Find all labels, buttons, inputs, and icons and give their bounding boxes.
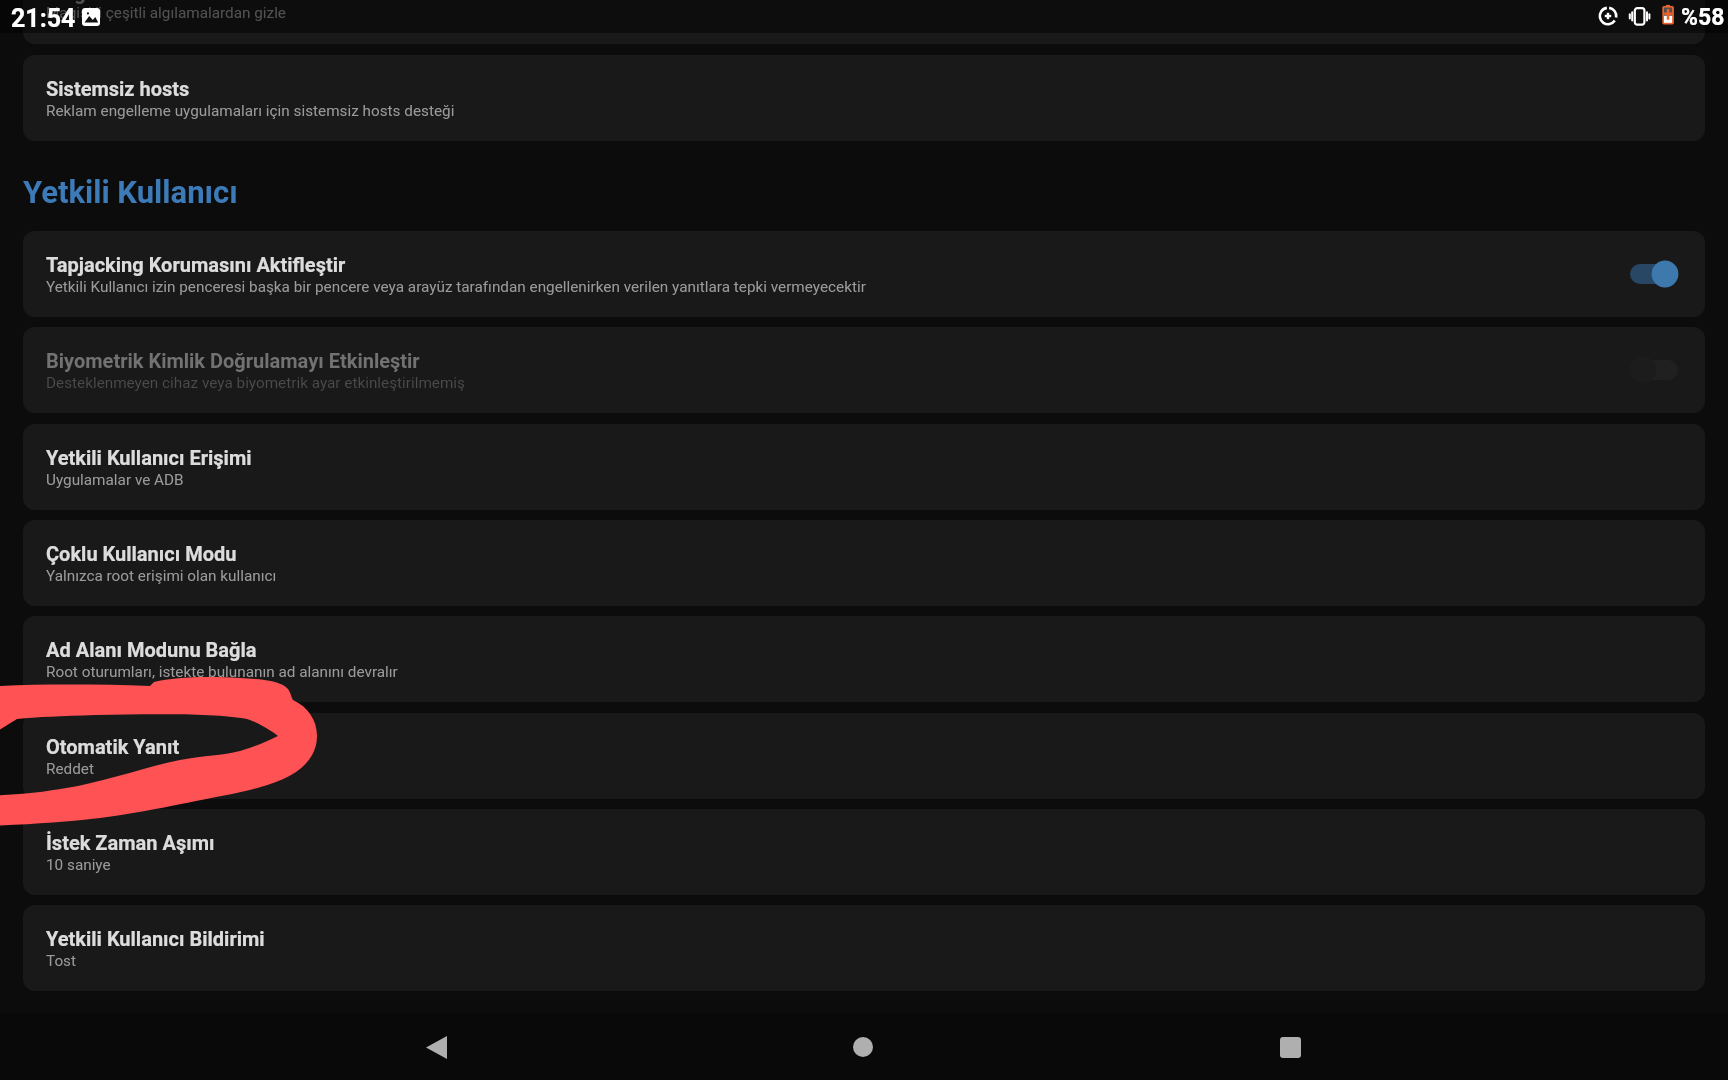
button[interactable]: Magisk'i Gizle xyxy=(23,0,1705,44)
other: Data saver xyxy=(1596,4,1620,28)
staticText: %58 xyxy=(1681,4,1725,31)
button[interactable]: Çoklu Kullanıcı Modu xyxy=(23,520,1705,606)
staticText: Desteklenmeyen cihaz veya biyometrik aya… xyxy=(46,374,465,392)
staticText: Biyometrik Kimlik Doğrulamayı Etkinleşti… xyxy=(46,349,420,372)
staticText: Root oturumları, istekte bulunanın ad al… xyxy=(46,663,398,681)
button[interactable]: Otomatik Yanıt xyxy=(23,713,1705,799)
staticText: Otomatik Yanıt xyxy=(46,735,180,758)
staticText: Sistemsiz hosts xyxy=(46,77,190,100)
button[interactable]: Back xyxy=(406,1017,466,1077)
staticText: Reddet xyxy=(46,760,94,778)
staticText: Yalnızca root erişimi olan kullanıcı xyxy=(46,567,277,585)
staticText: Yetkili Kullanıcı Bildirimi xyxy=(46,927,265,950)
other: Battery 58 percent xyxy=(1660,3,1676,27)
staticText: Yetkili Kullanıcı izin penceresi başka b… xyxy=(46,278,866,296)
button[interactable]: Biyometrik Kimlik Doğrulamayı Etkinleşti… xyxy=(23,327,1705,413)
staticText: Magisk'i Gizle xyxy=(46,0,171,4)
button[interactable]: Switch on xyxy=(1627,257,1681,291)
staticText: Reklam engelleme uygulamaları için siste… xyxy=(46,102,455,120)
staticText: Tapjacking Korumasını Aktifleştir xyxy=(46,253,346,276)
staticText: Uygulamalar ve ADB xyxy=(46,471,184,489)
staticText: Ad Alanı Modunu Bağla xyxy=(46,638,257,661)
button[interactable]: Ad Alanı Modunu Bağla xyxy=(23,616,1705,702)
button[interactable]: Yetkili Kullanıcı Erişimi xyxy=(23,424,1705,510)
staticText: Çoklu Kullanıcı Modu xyxy=(46,542,237,565)
button[interactable]: Tapjacking Korumasını Aktifleştir xyxy=(23,231,1705,317)
staticText: 21:54 xyxy=(11,4,76,33)
button[interactable]: Recent apps xyxy=(1260,1017,1320,1077)
button[interactable]: Yetkili Kullanıcı Bildirimi xyxy=(23,905,1705,991)
button[interactable]: Sistemsiz hosts xyxy=(23,55,1705,141)
button[interactable]: Home xyxy=(833,1017,893,1077)
button[interactable]: İstek Zaman Aşımı xyxy=(23,809,1705,895)
staticText: Yetkili Kullanıcı xyxy=(23,174,238,210)
staticText: İstek Zaman Aşımı xyxy=(46,831,215,854)
staticText: Magisk'i çeşitli algılamalardan gizle xyxy=(46,4,286,22)
staticText: Tost xyxy=(46,952,77,970)
staticText: Yetkili Kullanıcı Erişimi xyxy=(46,446,252,469)
staticText: 10 saniye xyxy=(46,856,111,874)
other: Vibrate xyxy=(1628,4,1652,28)
